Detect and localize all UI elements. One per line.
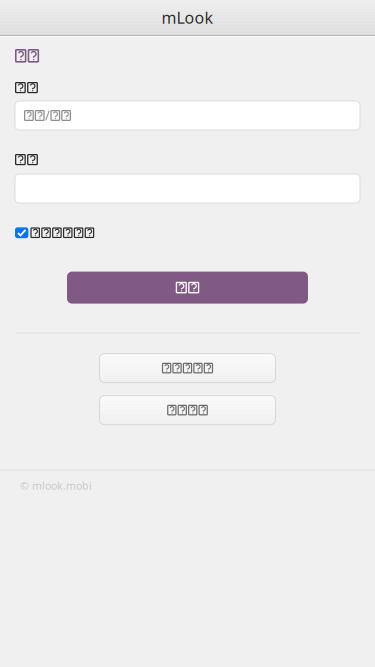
button[interactable] <box>99 354 275 383</box>
button[interactable] <box>15 49 39 63</box>
button[interactable] <box>67 272 308 304</box>
button[interactable] <box>99 396 275 425</box>
staticText: © mlook.mobi <box>20 479 92 493</box>
staticText: mLook <box>161 7 213 28</box>
button[interactable] <box>15 227 360 238</box>
